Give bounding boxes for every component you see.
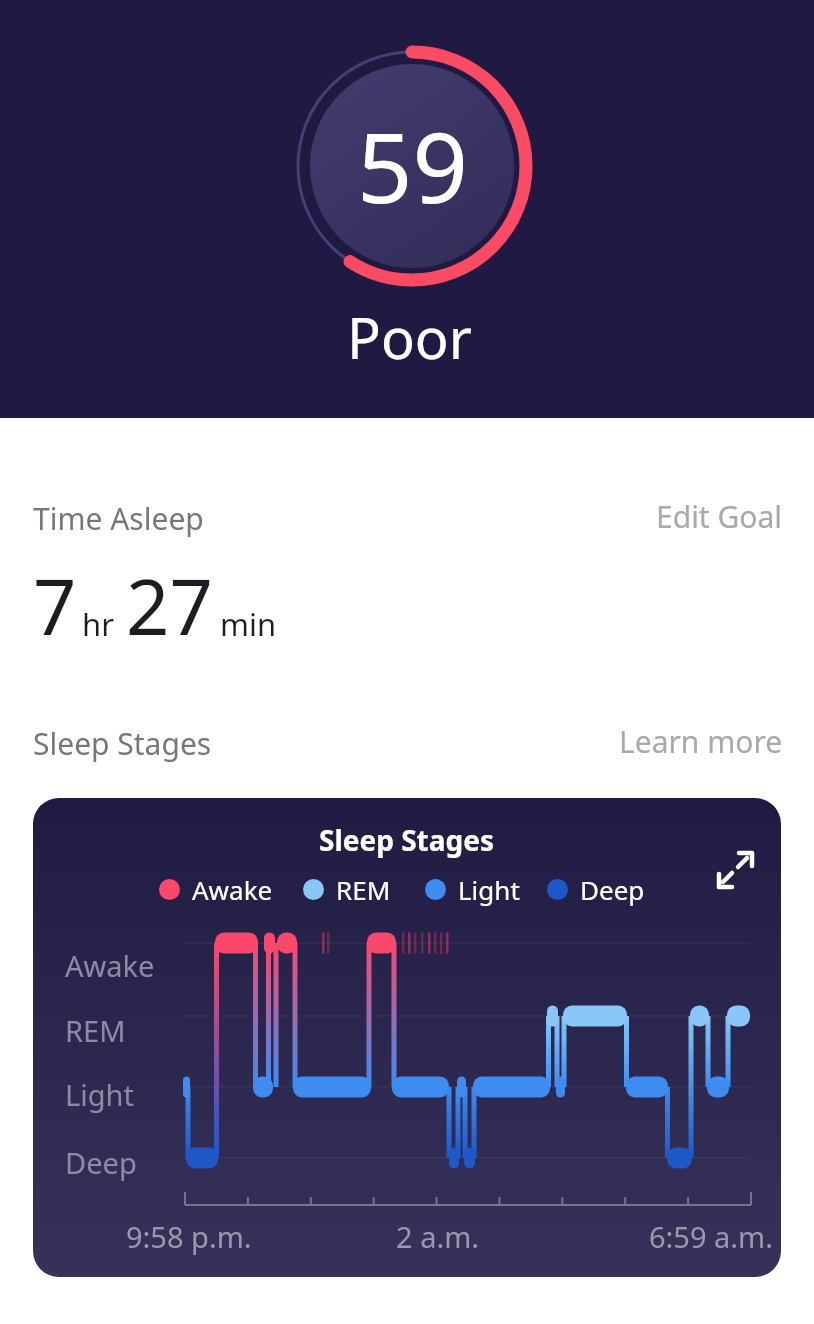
staticText: Awake	[65, 946, 155, 985]
staticText: min	[220, 603, 277, 645]
staticText: 59	[357, 99, 468, 231]
staticText: Light	[458, 872, 520, 907]
staticText: Awake	[192, 872, 273, 907]
staticText: 27	[126, 554, 213, 658]
staticText: 7	[33, 554, 77, 658]
staticText: 2 a.m.	[396, 1217, 480, 1256]
staticText: Time Asleep	[33, 498, 204, 539]
staticText: Sleep Stages	[33, 723, 212, 764]
button[interactable]: Sleep Stages	[33, 798, 781, 1277]
staticText: Learn more	[619, 721, 783, 762]
button[interactable]: Awake	[159, 872, 273, 907]
staticText: 9:58 p.m.	[126, 1217, 252, 1256]
staticText: Sleep Stages	[319, 821, 495, 859]
staticText: REM	[336, 872, 391, 907]
staticText: Deep	[65, 1143, 137, 1182]
button[interactable]: REM	[303, 872, 391, 907]
button[interactable]: Deep	[547, 872, 645, 907]
staticText: Edit Goal	[656, 496, 783, 537]
staticText: 6:59 a.m.	[649, 1217, 774, 1256]
button[interactable]: Light	[425, 872, 520, 907]
button[interactable]	[709, 846, 761, 898]
button[interactable]: Learn more	[619, 721, 814, 762]
staticText: hr	[82, 603, 114, 645]
staticText: Deep	[580, 872, 645, 907]
staticText: Light	[65, 1075, 134, 1114]
staticText: Poor	[347, 299, 472, 375]
staticText: REM	[65, 1011, 126, 1050]
button[interactable]: Edit Goal	[656, 496, 814, 537]
